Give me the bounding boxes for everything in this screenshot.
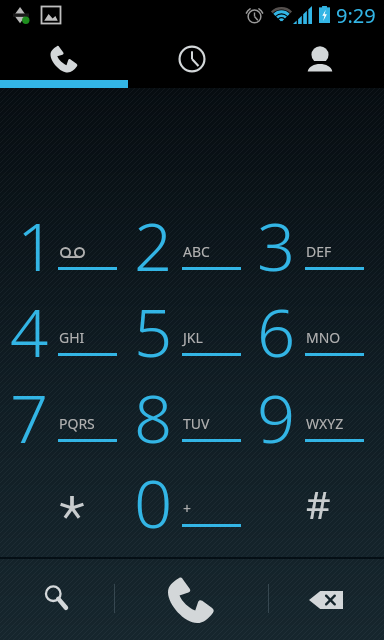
button[interactable]: 5 (134, 276, 257, 362)
staticText: ABC (183, 242, 210, 261)
button[interactable]: Search (0, 559, 114, 640)
button[interactable]: 4 (10, 276, 133, 362)
button[interactable] (10, 447, 133, 533)
staticText: WXYZ (306, 414, 344, 433)
button[interactable]: 7 (10, 362, 133, 448)
button[interactable]: 8 (134, 362, 257, 448)
staticText: 3 (257, 199, 296, 285)
button[interactable]: # (257, 447, 380, 533)
staticText: 9 (257, 371, 296, 457)
staticText: DEF (306, 242, 332, 261)
button[interactable]: 1 (10, 190, 133, 276)
staticText: MNO (306, 328, 341, 347)
staticText: GHI (59, 328, 85, 347)
staticText: TUV (183, 414, 210, 433)
staticText: 9:29 (336, 2, 376, 27)
button[interactable]: Phone (0, 25, 128, 80)
button[interactable]: 2 (134, 190, 257, 276)
staticText: 8 (134, 371, 173, 457)
staticText: 7 (10, 371, 49, 457)
button[interactable]: Contacts (256, 25, 384, 80)
button[interactable]: 9 (257, 362, 380, 448)
button[interactable]: 0 (134, 447, 257, 533)
staticText: # (306, 478, 331, 530)
staticText: PQRS (59, 414, 95, 433)
button[interactable]: Call history (128, 25, 256, 80)
staticText: 2 (134, 199, 173, 285)
staticText: + (183, 499, 192, 518)
staticText: 1 (17, 199, 56, 285)
staticText: JKL (183, 328, 203, 347)
button[interactable]: Backspace (269, 559, 384, 640)
staticText: 5 (134, 285, 173, 371)
staticText: 4 (10, 285, 49, 371)
staticText: 0 (134, 456, 173, 542)
button[interactable]: Call (115, 559, 268, 640)
button[interactable]: 6 (257, 276, 380, 362)
staticText: 6 (257, 285, 296, 371)
button[interactable]: 3 (257, 190, 380, 276)
